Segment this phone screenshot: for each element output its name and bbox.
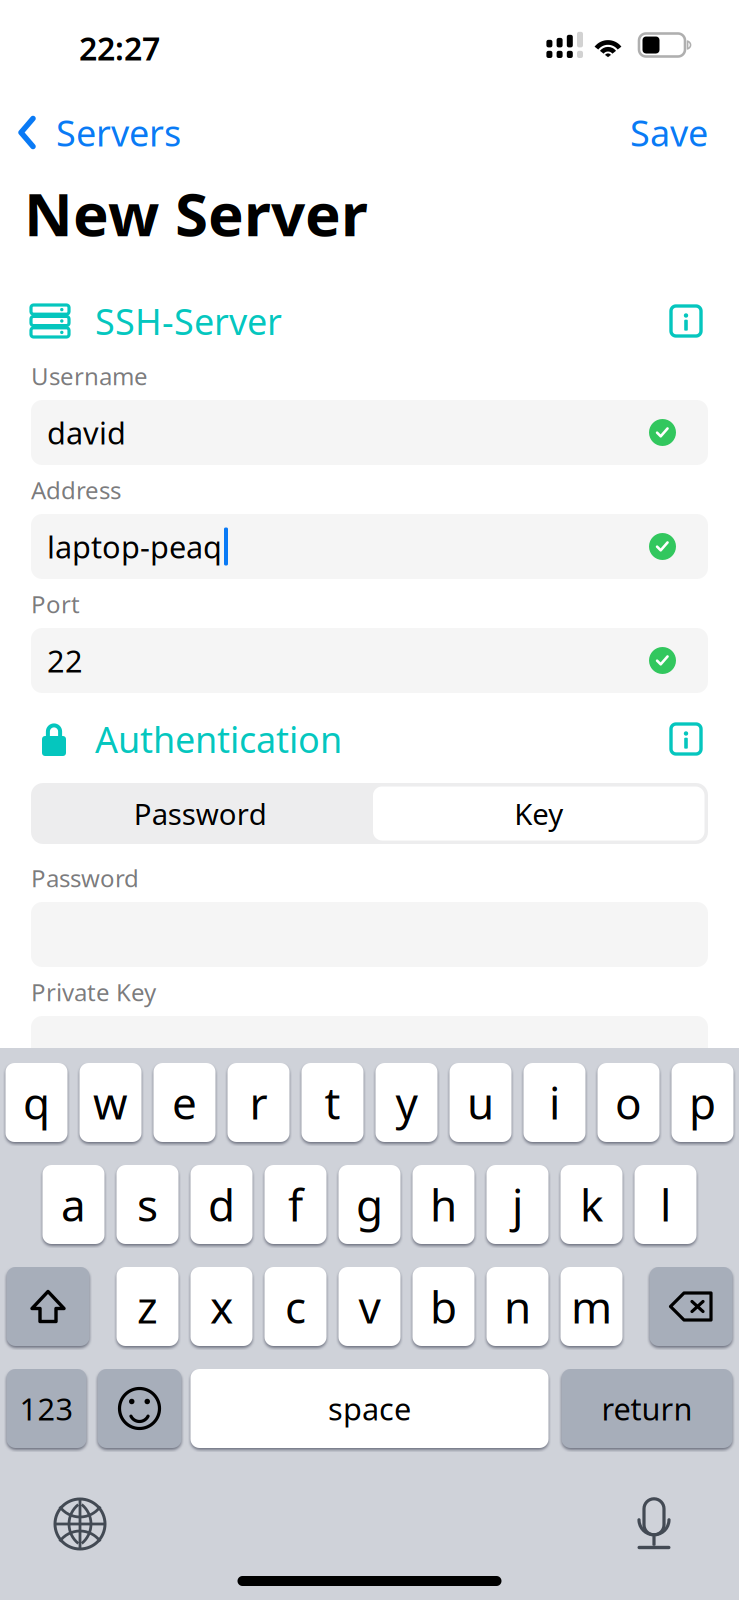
button[interactable]: About SSH-Server [671,306,708,336]
staticText: Password [31,862,139,894]
button[interactable]: 123 [6,1369,86,1448]
staticText: return [601,1388,692,1429]
button[interactable]: s [116,1165,178,1244]
button[interactable]: About Authentication [671,724,708,754]
staticText: New Server [24,173,368,253]
button[interactable]: x [190,1267,252,1346]
button[interactable]: j [486,1165,548,1244]
button[interactable]: f [264,1165,326,1244]
button[interactable]: a [42,1165,104,1244]
staticText: Save [630,109,708,156]
staticText: Address [31,474,121,506]
staticText: y [395,1073,417,1132]
staticText: q [23,1073,50,1132]
button[interactable]: v [338,1267,400,1346]
staticText: m [571,1277,612,1336]
button[interactable]: i [523,1063,585,1142]
staticText: l [660,1175,671,1234]
staticText: i [549,1073,560,1132]
button[interactable]: b [412,1267,474,1346]
staticText: c [285,1277,306,1336]
staticText: o [615,1073,642,1132]
button[interactable]: z [116,1267,178,1346]
staticText: p [689,1073,716,1132]
button[interactable]: space [190,1369,548,1448]
staticText: j [512,1175,523,1234]
button[interactable]: d [190,1165,252,1244]
staticText: v [358,1277,380,1336]
staticText: r [249,1073,267,1132]
button[interactable]: r [227,1063,289,1142]
staticText: Username [31,360,148,392]
staticText: david [47,412,126,453]
button[interactable]: h [412,1165,474,1244]
staticText: Servers [56,109,181,156]
button[interactable]: w [79,1063,141,1142]
button[interactable]: return [561,1369,732,1448]
button[interactable]: p [671,1063,733,1142]
button[interactable]: t [301,1063,363,1142]
button[interactable]: o [597,1063,659,1142]
staticText: b [430,1277,457,1336]
staticText: k [580,1175,603,1234]
staticText: 22 [47,640,83,681]
button[interactable]: Delete [649,1267,732,1346]
button[interactable]: Password [31,783,369,844]
button[interactable]: Servers [0,104,181,161]
staticText: Key [514,794,563,833]
button[interactable]: l [634,1165,696,1244]
button[interactable]: Dictate [637,1497,671,1551]
staticText: t [324,1073,340,1132]
button[interactable]: y [375,1063,437,1142]
button[interactable]: g [338,1165,400,1244]
staticText: SSH-Server [95,297,282,345]
staticText: Port [31,588,80,620]
button[interactable]: Emoji [97,1369,181,1448]
button[interactable]: n [486,1267,548,1346]
button[interactable]: u [449,1063,511,1142]
button[interactable]: q [5,1063,67,1142]
button[interactable]: e [153,1063,215,1142]
button[interactable]: k [560,1165,622,1244]
staticText: 22:27 [79,27,160,69]
staticText: s [137,1175,158,1234]
staticText: x [210,1277,233,1336]
staticText: Password [134,794,267,833]
staticText: d [208,1175,235,1234]
button[interactable]: Save [630,104,739,161]
staticText: h [430,1175,457,1234]
staticText: n [504,1277,531,1336]
button[interactable]: Shift [6,1267,89,1346]
staticText: w [93,1073,128,1132]
button[interactable]: c [264,1267,326,1346]
staticText: z [137,1277,158,1336]
staticText: Authentication [95,715,342,763]
button[interactable]: Key [369,783,708,844]
staticText: g [356,1175,383,1234]
staticText: space [328,1388,411,1429]
staticText: laptop-peaq [47,526,222,567]
button[interactable]: Next keyboard [54,1498,106,1550]
staticText: u [467,1073,494,1132]
staticText: 123 [19,1388,73,1429]
staticText: e [172,1073,197,1132]
staticText: a [61,1175,86,1234]
staticText: f [288,1175,303,1234]
staticText: Private Key [31,976,156,1008]
button[interactable]: m [560,1267,622,1346]
